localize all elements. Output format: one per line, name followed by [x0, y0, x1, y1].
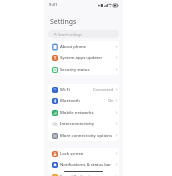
button[interactable]: Search settings — [48, 30, 119, 38]
staticText: System apps updater — [60, 55, 103, 61]
staticText: Interconnectivity — [60, 121, 95, 127]
staticText: 9:41 — [49, 2, 58, 8]
button[interactable]: More connectivity options — [48, 130, 119, 141]
button[interactable]: Security status — [48, 64, 119, 75]
button[interactable]: Sound & vibration — [48, 171, 119, 176]
other: Status icons — [98, 3, 118, 8]
button[interactable]: Mobile networks — [48, 107, 119, 118]
staticText: Lock screen — [60, 151, 84, 157]
button[interactable]: About phone — [48, 41, 119, 52]
button[interactable]: Bluetooth — [48, 95, 119, 106]
staticText: Sound & vibration — [60, 174, 96, 176]
staticText: Connected — [93, 87, 114, 92]
staticText: Bluetooth — [60, 98, 80, 104]
staticText: Notifications & status bar — [60, 162, 111, 168]
staticText: About phone — [60, 44, 87, 50]
button[interactable]: Lock screen — [48, 148, 119, 159]
button[interactable]: Notifications & status bar — [48, 159, 119, 170]
staticText: On — [108, 98, 114, 103]
button[interactable]: Interconnectivity — [48, 118, 119, 129]
staticText: Settings — [50, 17, 77, 26]
staticText: Wi-Fi — [60, 87, 70, 93]
staticText: More connectivity options — [60, 133, 112, 139]
staticText: Mobile networks — [60, 110, 94, 116]
staticText: Security status — [60, 67, 90, 73]
staticText: Search settings — [58, 32, 82, 36]
button[interactable]: System apps updater — [48, 52, 119, 63]
button[interactable]: Wi-Fi — [48, 84, 119, 95]
